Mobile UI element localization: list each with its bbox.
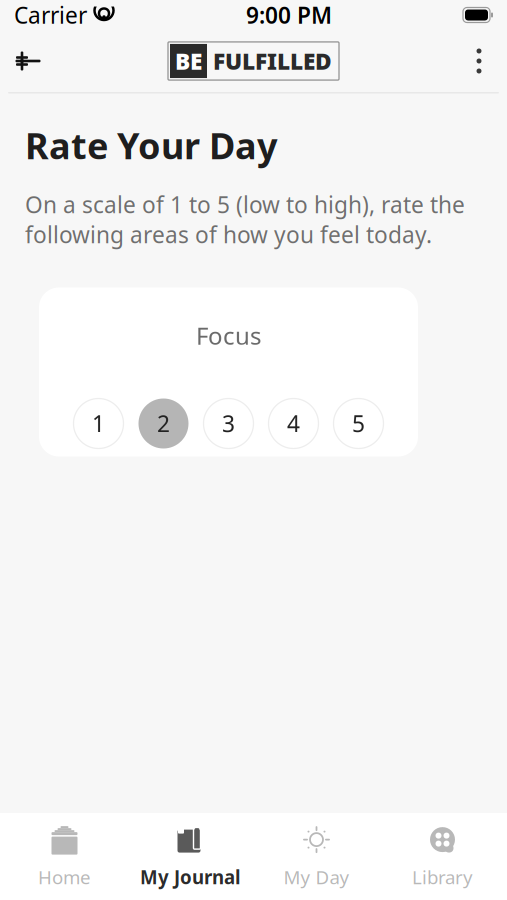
button[interactable]: Library xyxy=(379,813,505,900)
staticText: Carrier xyxy=(14,0,87,30)
button[interactable]: 5 xyxy=(333,398,383,448)
button[interactable]: Home xyxy=(1,813,127,900)
staticText: 3 xyxy=(222,408,235,439)
staticText: FULFILLED xyxy=(213,46,332,76)
button[interactable]: 4 xyxy=(268,398,318,448)
button[interactable]: 2 xyxy=(138,398,188,448)
staticText: Library xyxy=(412,865,473,889)
staticText: My Day xyxy=(283,865,349,889)
staticText: 4 xyxy=(287,408,300,439)
staticText: BE xyxy=(175,46,202,76)
staticText: Home xyxy=(38,865,91,889)
staticText: On a scale of 1 to 5 (low to high), rate… xyxy=(25,189,465,249)
staticText: 9:00 PM xyxy=(246,0,332,30)
staticText: 5 xyxy=(352,408,365,439)
button[interactable]: 3 xyxy=(203,398,253,448)
button[interactable]: 1 xyxy=(73,398,123,448)
staticText: My Journal xyxy=(140,865,241,889)
staticText: 1 xyxy=(92,408,105,439)
staticText: 2 xyxy=(157,408,170,439)
button[interactable]: Back xyxy=(4,37,52,85)
button[interactable]: More options xyxy=(455,37,503,85)
staticText: Rate Your Day xyxy=(25,121,278,169)
button[interactable]: My Day xyxy=(253,813,379,900)
button[interactable]: My Journal xyxy=(127,813,253,900)
staticText: Focus xyxy=(196,319,261,351)
